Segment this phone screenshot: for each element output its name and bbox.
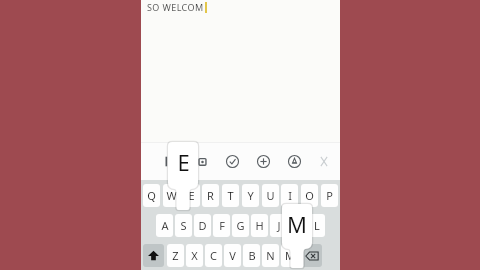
staticText: N (266, 248, 275, 263)
button[interactable]: Draw (284, 151, 304, 171)
button[interactable]: A (156, 214, 173, 237)
button[interactable]: I (281, 184, 298, 207)
staticText: Y (247, 188, 254, 203)
button[interactable]: Text style (192, 151, 212, 171)
staticText: V (229, 248, 236, 263)
staticText: Q (147, 188, 156, 203)
button[interactable]: N (262, 244, 279, 267)
staticText: C (210, 248, 217, 263)
staticText: H (255, 218, 264, 233)
staticText: R (207, 188, 214, 203)
button[interactable]: V (224, 244, 241, 267)
button[interactable]: Insert (253, 151, 273, 171)
staticText: J (277, 218, 281, 233)
button[interactable]: L (308, 214, 325, 237)
button[interactable]: C (205, 244, 222, 267)
button[interactable]: F (213, 214, 230, 237)
staticText: U (266, 188, 275, 203)
staticText: F (219, 218, 225, 233)
button[interactable]: T (222, 184, 239, 207)
button[interactable]: Backspace (301, 244, 322, 267)
button[interactable]: Formatting list (161, 151, 181, 171)
staticText: K (294, 218, 301, 233)
button[interactable]: K (289, 214, 306, 237)
button[interactable]: Y (242, 184, 259, 207)
button[interactable]: X (186, 244, 203, 267)
button[interactable]: Q (143, 184, 160, 207)
button[interactable]: B (243, 244, 260, 267)
button[interactable]: U (262, 184, 279, 207)
button[interactable]: D (194, 214, 211, 237)
staticText: M (285, 248, 295, 263)
staticText: W (166, 188, 177, 203)
staticText: M (287, 209, 307, 239)
button[interactable]: Checklist (222, 151, 242, 171)
button[interactable]: J (270, 214, 287, 237)
button[interactable]: P (321, 184, 338, 207)
staticText: O (305, 188, 314, 203)
button[interactable]: W (163, 184, 180, 207)
staticText: L (314, 218, 320, 233)
button[interactable]: S (175, 214, 192, 237)
staticText: P (326, 188, 333, 203)
button[interactable]: M (281, 244, 298, 267)
staticText: X (191, 248, 198, 263)
staticText: E (188, 188, 195, 203)
button[interactable]: Z (167, 244, 184, 267)
staticText: SO WELCOM (147, 1, 204, 13)
button[interactable]: R (202, 184, 219, 207)
button[interactable]: G (232, 214, 249, 237)
staticText: B (248, 248, 256, 263)
staticText: D (198, 218, 207, 233)
button[interactable]: Close (318, 151, 330, 171)
staticText: S (180, 218, 187, 233)
staticText: E (177, 147, 190, 177)
staticText: G (236, 218, 245, 233)
staticText: A (161, 218, 169, 233)
staticText: T (227, 188, 234, 203)
staticText: I (288, 188, 292, 203)
button[interactable]: O (301, 184, 318, 207)
button[interactable]: Shift (143, 244, 164, 267)
staticText: Z (172, 248, 179, 263)
button[interactable]: H (251, 214, 268, 237)
button[interactable]: E (183, 184, 200, 207)
